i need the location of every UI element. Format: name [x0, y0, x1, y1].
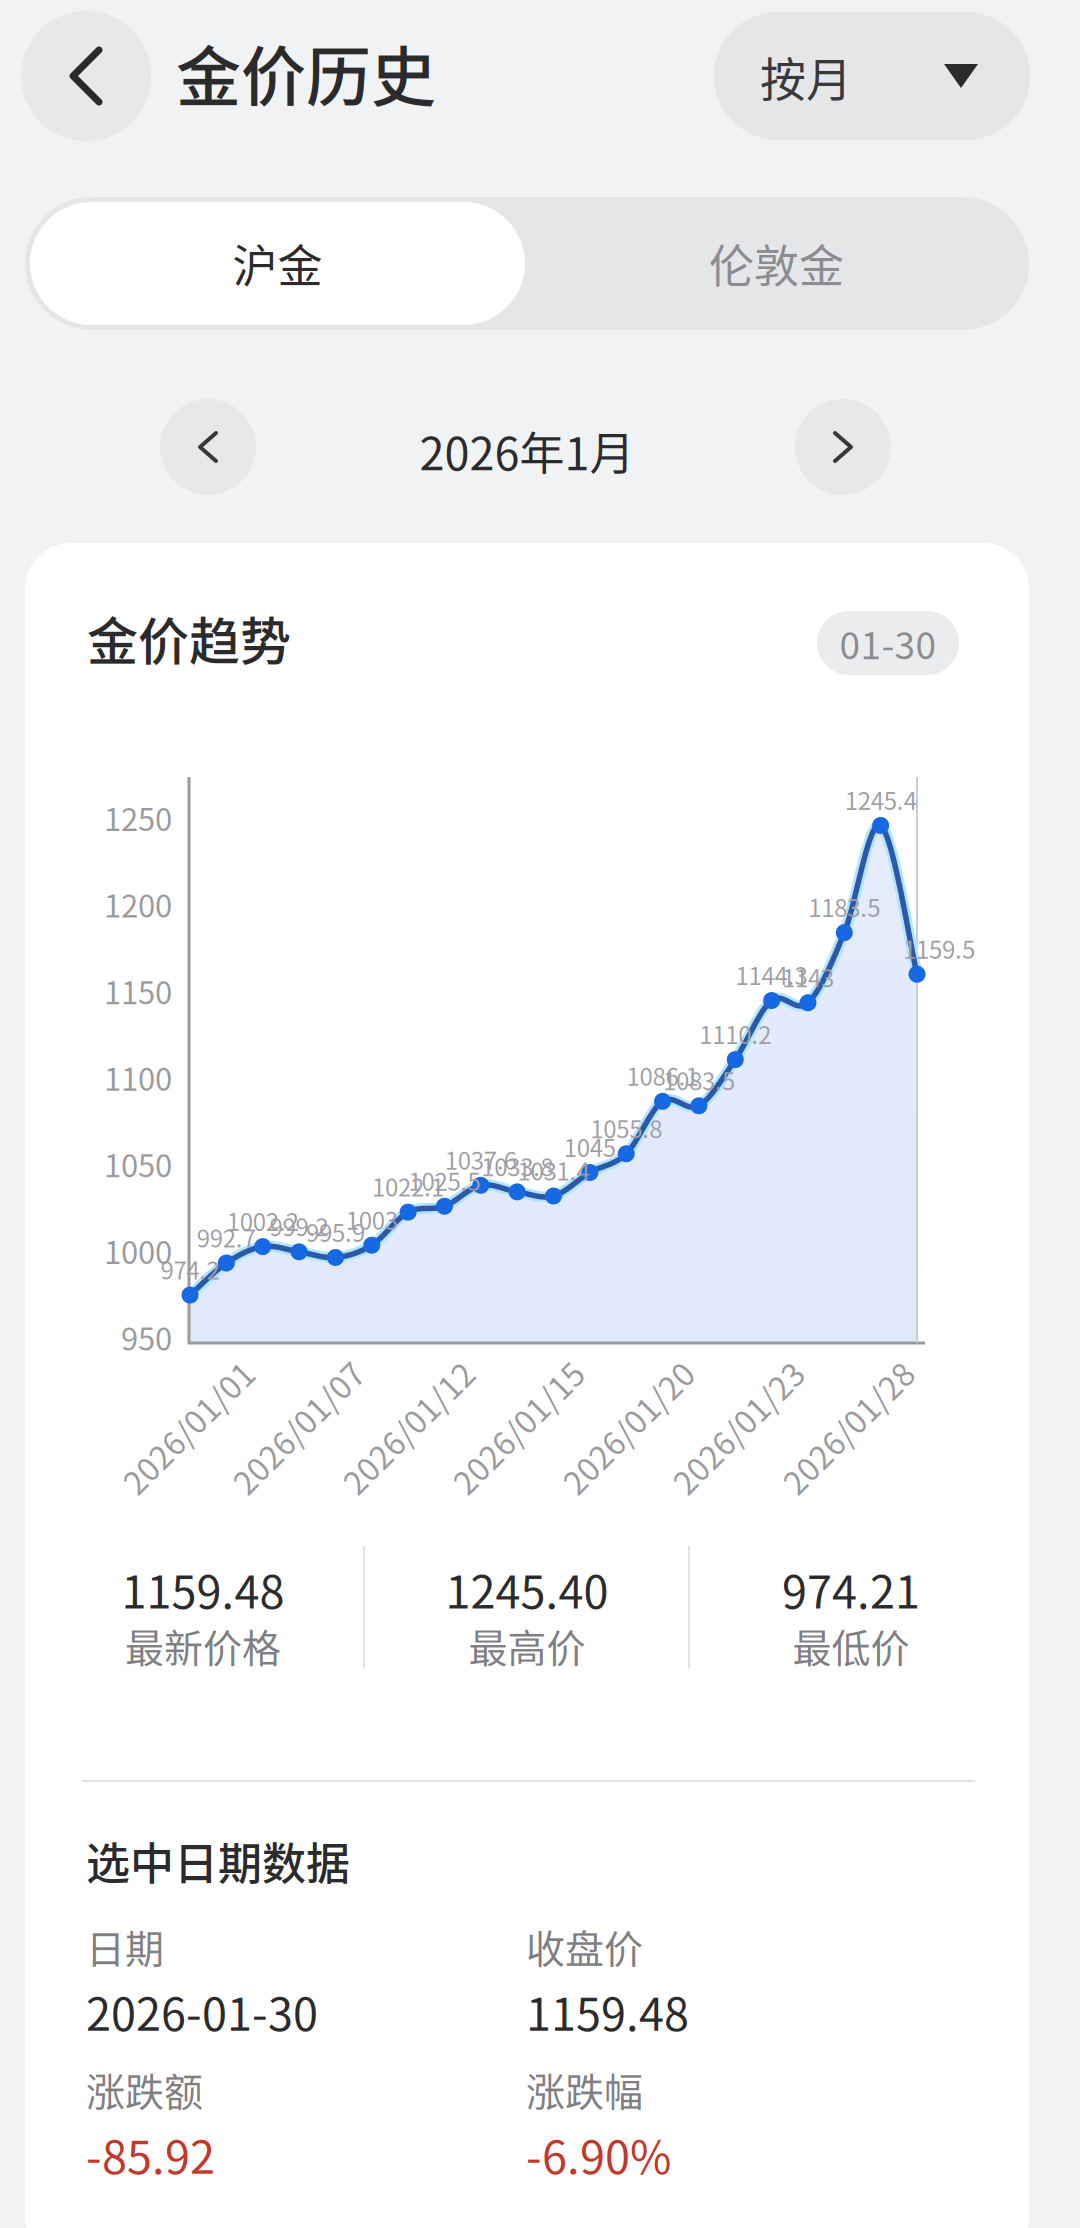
staticText: 按月 — [760, 43, 852, 109]
staticText: 999.2 — [270, 1208, 329, 1243]
staticText: 涨跌额 — [86, 2061, 203, 2117]
staticText: 2026/01/12 — [323, 1404, 493, 1450]
staticText: 2026/01/01 — [103, 1404, 273, 1450]
staticText: 收盘价 — [526, 1918, 643, 1974]
staticText: 金价历史 — [176, 25, 436, 119]
staticText: 伦敦金 — [709, 231, 844, 296]
staticText: 1110.2 — [699, 1016, 771, 1051]
staticText: 最低价 — [792, 1617, 909, 1674]
staticText: 2026/01/15 — [433, 1404, 603, 1450]
staticText: 1159.5 — [903, 931, 975, 966]
staticText: 2026年1月 — [419, 418, 634, 483]
button[interactable]: 沪金 — [30, 202, 525, 325]
staticText: 1031.4 — [517, 1153, 589, 1187]
staticText: 1159.48 — [526, 1978, 689, 2044]
staticText: 2026/01/28 — [763, 1404, 933, 1450]
staticText: 1144.3 — [736, 957, 808, 992]
staticText: 2026/01/23 — [653, 1404, 823, 1450]
staticText: 1200 — [104, 882, 172, 926]
staticText: 974.21 — [782, 1556, 920, 1621]
staticText: 2026/01/07 — [213, 1404, 383, 1450]
staticText: 1045 — [564, 1129, 616, 1164]
staticText: 1003 — [346, 1202, 398, 1237]
staticText: 1086.1 — [626, 1058, 698, 1093]
staticText: 1245.40 — [445, 1556, 608, 1621]
staticText: 1083.5 — [663, 1062, 735, 1097]
staticText: 选中日期数据 — [86, 1829, 350, 1893]
staticText: 1055.8 — [590, 1110, 662, 1145]
button[interactable]: Back — [21, 11, 151, 141]
staticText: 1000 — [104, 1228, 172, 1273]
staticText: 995.9 — [306, 1214, 365, 1249]
staticText: 1159.48 — [121, 1556, 284, 1621]
staticText: -85.92 — [86, 2121, 215, 2187]
staticText: 1183.5 — [808, 889, 880, 924]
staticText: 1100 — [104, 1055, 172, 1100]
button[interactable]: Previous month — [160, 399, 256, 495]
staticText: 最新价格 — [125, 1617, 281, 1674]
staticText: 金价趋势 — [87, 601, 291, 675]
button[interactable]: 按月 — [714, 12, 1030, 140]
staticText: 1150 — [104, 968, 172, 1013]
staticText: 1245.4 — [845, 782, 917, 817]
staticText: 1050 — [104, 1141, 172, 1186]
staticText: 974.2 — [160, 1252, 219, 1286]
button[interactable]: 伦敦金 — [529, 202, 1024, 325]
button[interactable]: Next month — [795, 399, 891, 495]
staticText: 2026-01-30 — [86, 1978, 318, 2044]
staticText: 涨跌幅 — [526, 2061, 643, 2117]
staticText: -6.90% — [526, 2121, 671, 2187]
staticText: 沪金 — [232, 231, 322, 296]
staticText: 1025.5 — [408, 1163, 480, 1198]
staticText: 1037.6 — [445, 1142, 517, 1177]
staticText: 01-30 — [839, 616, 936, 670]
staticText: 950 — [121, 1315, 172, 1359]
staticText: 2026/01/20 — [543, 1404, 713, 1450]
staticText: 1033.8 — [481, 1148, 553, 1183]
staticText: 992.7 — [197, 1220, 256, 1254]
staticText: 最高价 — [468, 1617, 585, 1674]
staticText: 日期 — [86, 1918, 164, 1974]
staticText: 1022.1 — [372, 1169, 444, 1204]
staticText: 1143 — [782, 959, 834, 994]
staticText: 1002.2 — [227, 1203, 299, 1238]
staticText: 1250 — [104, 795, 172, 840]
